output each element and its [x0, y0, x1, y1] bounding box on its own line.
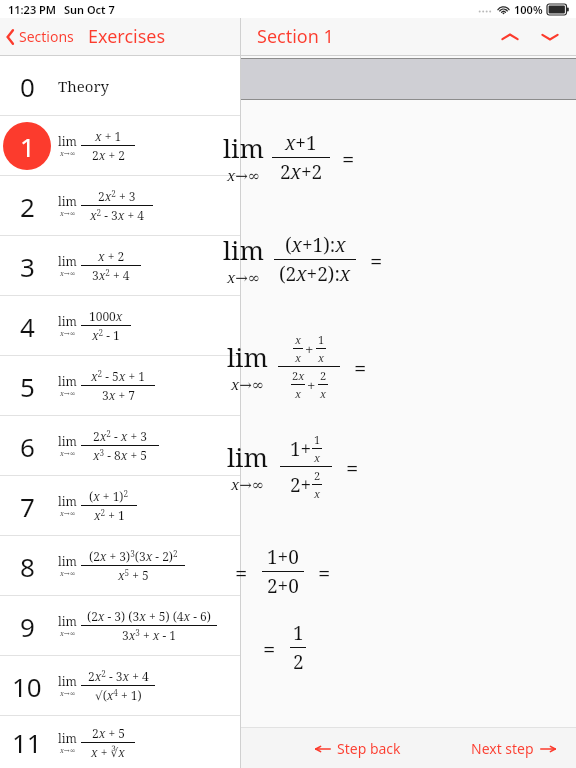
staticText: x + 2: [98, 248, 125, 264]
button[interactable]: Sections: [0, 23, 82, 50]
staticText: =: [354, 352, 367, 382]
staticText: =: [263, 633, 276, 663]
staticText: lim: [58, 730, 77, 746]
staticText: x + 1: [95, 128, 122, 144]
button[interactable]: 0: [0, 56, 240, 116]
staticText: 2x2 - x + 3: [93, 428, 147, 444]
staticText: 2x + 5: [92, 725, 125, 741]
staticText: +: [305, 339, 314, 359]
staticText: x→∞: [60, 569, 76, 579]
staticText: x→∞: [60, 329, 76, 339]
staticText: Theory: [58, 76, 109, 96]
staticText: x2 - 1: [92, 327, 120, 343]
staticText: 0: [20, 69, 35, 104]
staticText: x: [314, 450, 321, 465]
button[interactable]: 7: [0, 476, 240, 536]
staticText: lim: [227, 339, 268, 374]
staticText: x→∞: [60, 449, 76, 459]
staticText: 6: [20, 429, 35, 464]
button[interactable]: Next: [530, 21, 570, 53]
staticText: Step back: [337, 739, 401, 758]
staticText: lim: [223, 130, 264, 165]
staticText: 1: [314, 432, 321, 447]
staticText: x2 - 5x + 1: [91, 368, 145, 384]
button[interactable]: 8: [0, 536, 240, 596]
staticText: x: [295, 350, 302, 365]
staticText: lim: [58, 493, 77, 509]
staticText: 1+0: [267, 544, 299, 570]
button[interactable]: Next step: [465, 733, 562, 764]
staticText: lim: [58, 673, 77, 689]
staticText: x + ∛x: [91, 744, 125, 760]
button[interactable]: 2: [0, 176, 240, 236]
staticText: =: [342, 143, 355, 173]
staticText: lim: [58, 253, 77, 269]
staticText: x: [318, 350, 325, 365]
staticText: x3 - 8x + 5: [93, 447, 147, 463]
button[interactable]: 5: [0, 356, 240, 416]
staticText: 1+: [290, 436, 312, 462]
staticText: =: [370, 245, 383, 275]
staticText: x→∞: [60, 269, 76, 279]
staticText: (2x+2):x: [279, 261, 351, 287]
staticText: 2: [293, 649, 304, 675]
staticText: Sections: [19, 27, 74, 46]
staticText: =: [235, 557, 248, 587]
staticText: 7: [20, 489, 35, 524]
staticText: 2x+2: [280, 159, 323, 185]
staticText: 2x2 - 3x + 4: [88, 668, 149, 684]
staticText: (2x - 3) (3x + 5) (4x - 6): [87, 608, 211, 624]
staticText: x2 - 3x + 4: [90, 207, 144, 223]
staticText: 11: [12, 725, 42, 760]
staticText: 2: [20, 189, 35, 224]
staticText: lim: [223, 232, 264, 267]
button[interactable]: 3: [0, 236, 240, 296]
button[interactable]: Previous: [490, 21, 530, 53]
staticText: Next step: [471, 739, 534, 758]
staticText: =: [318, 557, 331, 587]
button[interactable]: 11: [0, 716, 240, 768]
staticText: lim: [58, 133, 77, 149]
staticText: x→∞: [60, 509, 76, 519]
staticText: x→∞: [227, 267, 261, 287]
staticText: 2+: [290, 472, 312, 498]
staticText: x→∞: [60, 209, 76, 219]
staticText: 5: [20, 369, 35, 404]
staticText: √(x4 + 1): [95, 687, 142, 703]
staticText: lim: [58, 433, 77, 449]
button[interactable]: 6: [0, 416, 240, 476]
staticText: x: [295, 332, 302, 347]
staticText: x2 + 1: [94, 507, 125, 523]
staticText: x→∞: [60, 746, 76, 756]
staticText: x→∞: [60, 149, 76, 159]
staticText: x→∞: [60, 629, 76, 639]
button[interactable]: Step back: [309, 733, 407, 764]
staticText: lim: [227, 439, 268, 474]
staticText: lim: [58, 373, 77, 389]
staticText: 2: [314, 468, 321, 483]
staticText: 2+0: [267, 573, 299, 599]
staticText: 3x + 7: [102, 387, 135, 403]
staticText: 1: [20, 129, 35, 164]
staticText: lim: [58, 613, 77, 629]
staticText: 3: [20, 249, 35, 284]
staticText: (x+1):x: [285, 232, 346, 258]
staticText: Section 1: [257, 24, 334, 49]
staticText: 2x: [292, 368, 305, 383]
staticText: lim: [58, 553, 77, 569]
staticText: lim: [58, 193, 77, 209]
staticText: =: [346, 452, 359, 482]
staticText: 3x2 + 4: [92, 267, 130, 283]
staticText: 11:23 PM: [8, 2, 57, 17]
button[interactable]: 9: [0, 596, 240, 656]
button[interactable]: 1: [0, 116, 240, 176]
staticText: x5 + 5: [118, 567, 149, 583]
staticText: x: [320, 386, 327, 401]
staticText: 3x3 + x - 1: [122, 627, 176, 643]
button[interactable]: 4: [0, 296, 240, 356]
button[interactable]: 10: [0, 656, 240, 716]
staticText: 1: [293, 620, 304, 646]
staticText: 4: [20, 309, 35, 344]
staticText: +: [307, 375, 316, 395]
staticText: x→∞: [60, 389, 76, 399]
